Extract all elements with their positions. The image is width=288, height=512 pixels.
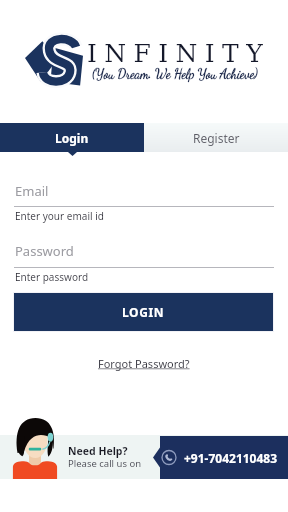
staticText: Forgot Password? — [98, 356, 190, 371]
other: Infinity logo — [25, 35, 83, 87]
button[interactable]: Register — [144, 123, 288, 152]
button[interactable]: Call +91-7042110483 — [153, 436, 288, 479]
staticText: (You Dream. We Help You Achieve) — [92, 66, 258, 82]
staticText: LOGIN — [122, 304, 165, 320]
staticText: Enter your email id — [15, 209, 104, 223]
staticText: Password — [15, 242, 74, 260]
staticText: Need Help? — [68, 444, 128, 458]
button[interactable]: Forgot Password? — [96, 355, 192, 371]
staticText: Please call us on — [68, 457, 142, 470]
button[interactable]: Login — [0, 123, 144, 152]
staticText: Login — [55, 130, 89, 146]
staticText: Enter password — [15, 270, 89, 284]
staticText: INFINITY — [87, 39, 271, 68]
other: Support agent — [12, 417, 58, 479]
staticText: +91-7042110483 — [184, 450, 278, 466]
button[interactable]: LOGIN — [14, 293, 273, 331]
button[interactable]: Need Help? — [68, 444, 144, 472]
staticText: Email — [15, 182, 49, 200]
staticText: Register — [193, 130, 240, 146]
